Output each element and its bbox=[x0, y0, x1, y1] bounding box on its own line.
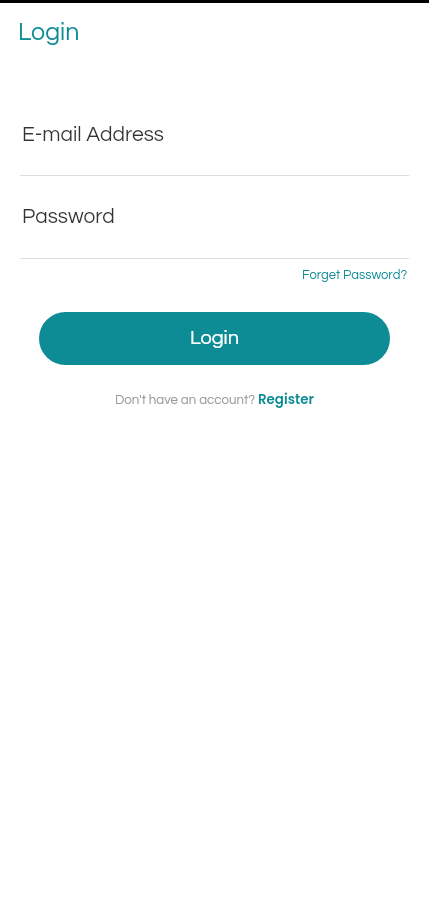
button[interactable] bbox=[0, 124, 429, 181]
button[interactable]: Register bbox=[258, 390, 314, 409]
staticText: Don't have an account? bbox=[115, 393, 258, 407]
button[interactable]: Forget Password? bbox=[302, 268, 408, 281]
button[interactable]: Login bbox=[39, 312, 390, 365]
staticText: Password bbox=[22, 206, 115, 228]
staticText: Login bbox=[18, 19, 80, 45]
staticText: Login bbox=[190, 328, 240, 349]
button[interactable] bbox=[0, 206, 429, 264]
staticText: E-mail Address bbox=[22, 124, 164, 146]
